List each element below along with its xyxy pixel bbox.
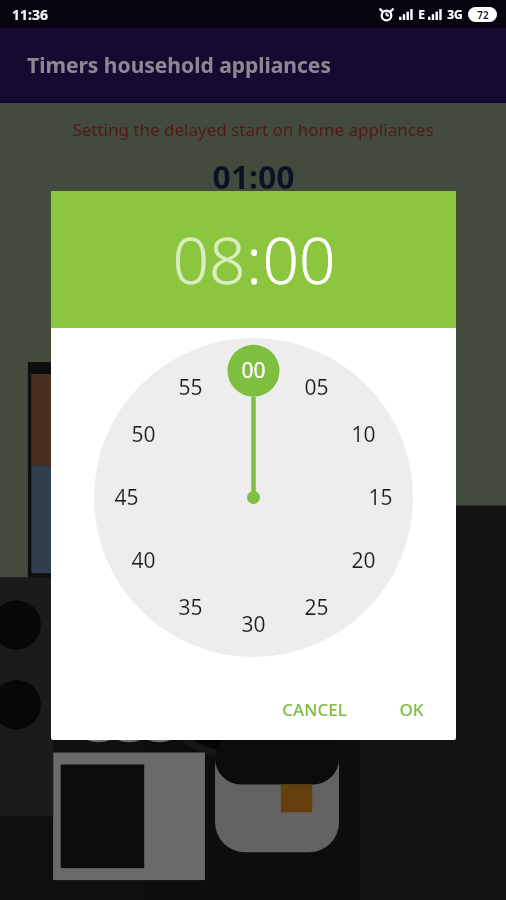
staticText: 01:00 bbox=[212, 155, 295, 199]
staticText: Timers household appliances bbox=[27, 51, 331, 80]
button[interactable]: 50 bbox=[94, 338, 413, 657]
staticText: 05 bbox=[304, 373, 329, 402]
button[interactable] bbox=[103, 249, 403, 295]
button[interactable]: 45 bbox=[94, 338, 413, 657]
staticText: 45 bbox=[114, 483, 139, 512]
button[interactable]: 35 bbox=[94, 338, 413, 657]
staticText: 3G bbox=[447, 6, 463, 22]
staticText: : bbox=[246, 216, 262, 303]
staticText: 11:36 bbox=[12, 5, 48, 24]
button[interactable]: 40 bbox=[94, 338, 413, 657]
staticText: 10 bbox=[351, 420, 376, 449]
staticText: 00 bbox=[241, 356, 266, 385]
staticText: 25 bbox=[304, 593, 329, 622]
staticText: Setting the delayed start on home applia… bbox=[72, 118, 434, 141]
staticText: E bbox=[418, 6, 425, 22]
button[interactable]: OK bbox=[389, 690, 434, 729]
button[interactable]: 00 bbox=[94, 338, 413, 657]
staticText: 30 bbox=[241, 610, 266, 639]
staticText: 55 bbox=[178, 373, 203, 402]
staticText: 20 bbox=[351, 546, 376, 575]
button[interactable]: CANCEL bbox=[272, 690, 357, 729]
other: Minute selector clock bbox=[94, 338, 413, 657]
button[interactable]: 20 bbox=[94, 338, 413, 657]
button[interactable]: 25 bbox=[94, 338, 413, 657]
staticText: CANCEL bbox=[282, 698, 347, 721]
staticText: 72 bbox=[477, 8, 489, 22]
staticText: 35 bbox=[178, 593, 203, 622]
staticText: 40 bbox=[131, 546, 156, 575]
staticText: 15 bbox=[368, 483, 393, 512]
button[interactable]: 30 bbox=[94, 338, 413, 657]
button[interactable]: 10 bbox=[94, 338, 413, 657]
button[interactable]: 08 bbox=[172, 216, 246, 303]
button[interactable]: 15 bbox=[94, 338, 413, 657]
staticText: 50 bbox=[131, 420, 156, 449]
button[interactable]: 55 bbox=[94, 338, 413, 657]
staticText: OK bbox=[399, 698, 424, 721]
button[interactable]: 05 bbox=[94, 338, 413, 657]
button[interactable]: 00 bbox=[262, 216, 336, 303]
